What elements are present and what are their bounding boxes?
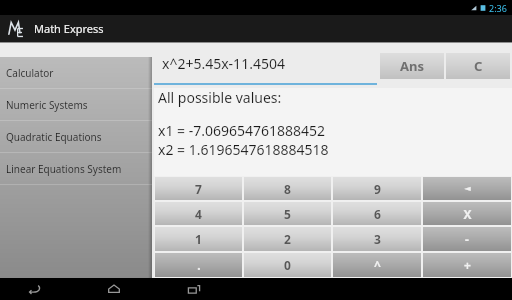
button[interactable]: 9 — [333, 177, 421, 200]
staticText: Math Express — [34, 21, 104, 36]
staticText: 0 — [284, 257, 291, 273]
button[interactable]: 6 — [333, 202, 421, 225]
staticText: ^ — [374, 257, 381, 273]
staticText: Calculator — [6, 66, 54, 80]
button[interactable]: ◄ — [423, 177, 511, 200]
button[interactable]: + — [423, 253, 511, 277]
staticText: ◄ — [464, 184, 471, 193]
button[interactable]: Recents — [182, 278, 206, 300]
button[interactable]: 0 — [244, 253, 331, 277]
button[interactable]: Numeric Systems — [0, 89, 152, 121]
staticText: X — [463, 206, 472, 222]
staticText: C — [474, 57, 483, 75]
staticText: 3 — [374, 231, 381, 247]
button[interactable]: Quadratic Equations — [0, 121, 152, 153]
staticText: All possible values: — [158, 88, 282, 107]
button[interactable]: . — [155, 253, 242, 277]
button[interactable]: 7 — [155, 177, 242, 200]
button[interactable]: - — [423, 227, 511, 251]
button[interactable]: x^2+5.45x-11.4504 — [154, 43, 380, 88]
button[interactable]: 4 — [155, 202, 242, 225]
button[interactable]: 5 — [244, 202, 331, 225]
staticText: 6 — [374, 206, 381, 222]
staticText: - — [465, 231, 469, 247]
staticText: 5 — [284, 206, 291, 222]
staticText: 4 — [195, 206, 202, 222]
staticText: 2:36 — [489, 2, 507, 14]
staticText: x^2+5.45x-11.4504 — [162, 54, 285, 73]
button[interactable]: 2 — [244, 227, 331, 251]
button[interactable]: 3 — [333, 227, 421, 251]
staticText: x2 = 1.6196547618884518 — [158, 140, 329, 159]
staticText: 9 — [374, 181, 381, 197]
staticText: 8 — [284, 181, 291, 197]
button[interactable]: Linear Equations System — [0, 153, 152, 185]
button[interactable]: Ans — [380, 53, 444, 79]
staticText: Ans — [400, 57, 424, 75]
button[interactable]: Calculator — [0, 57, 152, 89]
button[interactable]: 8 — [244, 177, 331, 200]
button[interactable]: C — [446, 53, 510, 79]
staticText: . — [197, 257, 201, 273]
button[interactable]: X — [423, 202, 511, 225]
button[interactable]: Back — [22, 278, 46, 300]
staticText: x1 = -7.069654761888452 — [158, 121, 326, 140]
staticText: Linear Equations System — [6, 162, 122, 176]
staticText: + — [464, 257, 471, 273]
button[interactable]: 1 — [155, 227, 242, 251]
button[interactable]: Home — [102, 278, 126, 300]
staticText: Numeric Systems — [6, 98, 88, 112]
staticText: Quadratic Equations — [6, 130, 102, 144]
staticText: 1 — [195, 231, 202, 247]
staticText: 2 — [284, 231, 291, 247]
staticText: 7 — [195, 181, 202, 197]
button[interactable]: ^ — [333, 253, 421, 277]
